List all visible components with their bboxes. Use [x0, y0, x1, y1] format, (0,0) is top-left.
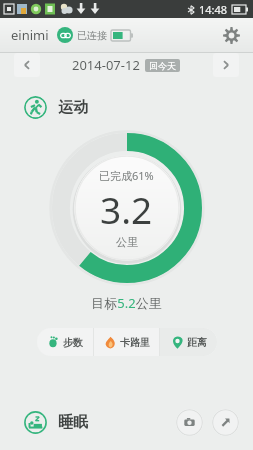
- staticText: 目标5.2公里: [91, 294, 162, 312]
- staticText: 运动: [58, 98, 88, 117]
- button[interactable]: Share: [212, 409, 239, 436]
- button[interactable]: Settings: [217, 21, 245, 49]
- staticText: 睡眠: [58, 413, 88, 432]
- staticText: 3.2: [100, 184, 153, 234]
- staticText: 卡路里: [120, 336, 150, 349]
- staticText: 公里: [116, 235, 138, 249]
- button[interactable]: 卡路里: [94, 328, 159, 356]
- button[interactable]: Next day: [213, 53, 239, 77]
- button[interactable]: Previous day: [14, 53, 40, 77]
- button[interactable]: Camera: [176, 409, 203, 436]
- staticText: 2014-07-12: [72, 56, 140, 74]
- staticText: 距离: [187, 336, 207, 349]
- button[interactable]: 步数: [37, 328, 93, 356]
- button[interactable]: 回今天: [145, 59, 180, 72]
- staticText: einimi: [11, 26, 49, 44]
- button[interactable]: 距离: [160, 328, 217, 356]
- staticText: 回今天: [149, 60, 176, 71]
- staticText: 已完成61%: [99, 168, 154, 183]
- staticText: 已连接: [77, 29, 107, 42]
- staticText: 步数: [63, 336, 83, 349]
- staticText: 14:48: [199, 2, 228, 17]
